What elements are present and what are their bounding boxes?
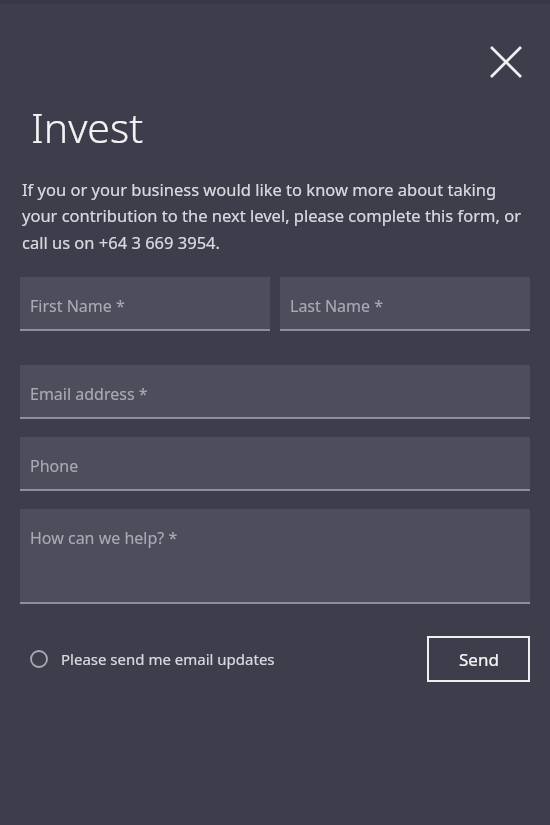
staticText: First Name * <box>30 295 125 317</box>
staticText: How can we help? * <box>30 527 178 549</box>
staticText: Invest <box>31 99 144 155</box>
staticText: Last Name * <box>290 295 384 317</box>
button[interactable]: Email address * <box>20 365 530 419</box>
button[interactable]: First Name * <box>20 277 270 331</box>
staticText: Phone <box>30 455 79 477</box>
button[interactable]: Last Name * <box>280 277 530 331</box>
button[interactable]: Send <box>427 636 530 682</box>
button[interactable]: How can we help? * <box>20 509 530 604</box>
staticText: If you or your business would like to kn… <box>22 178 530 254</box>
button[interactable]: Phone <box>20 437 530 491</box>
button[interactable]: Close <box>480 36 532 88</box>
button[interactable]: Please send me email updates <box>20 649 427 669</box>
staticText: Please send me email updates <box>61 649 275 669</box>
staticText: Send <box>459 648 499 671</box>
staticText: Email address * <box>30 383 148 405</box>
